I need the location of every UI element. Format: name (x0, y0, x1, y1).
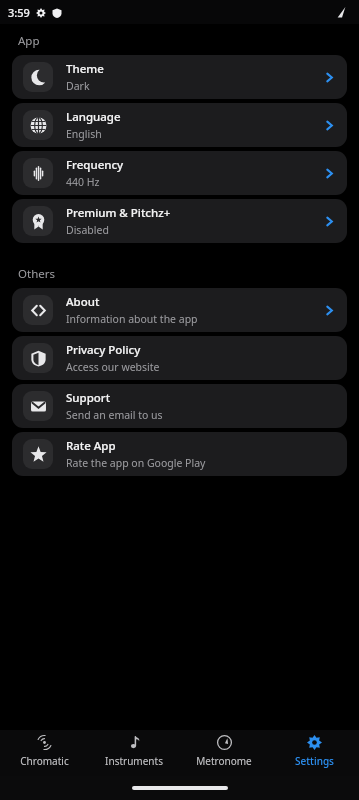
staticText: Access our website (66, 360, 160, 374)
staticText: Chromatic (20, 754, 69, 768)
staticText: Information about the app (66, 312, 198, 326)
staticText: Privacy Policy (66, 342, 141, 358)
staticText: Others (18, 266, 55, 282)
staticText: Send an email to us (66, 408, 163, 422)
button[interactable]: Settings (269, 730, 359, 776)
staticText: Support (66, 390, 111, 406)
staticText: Instruments (105, 754, 163, 768)
button[interactable]: Chromatic (0, 730, 89, 776)
button[interactable]: Rate App (12, 432, 347, 476)
staticText: Premium & Pitchz+ (66, 205, 171, 221)
staticText: Rate the app on Google Play (66, 456, 206, 470)
staticText: Frequency (66, 157, 124, 173)
button[interactable]: Metronome (179, 730, 269, 776)
staticText: App (18, 33, 40, 49)
staticText: Disabled (66, 223, 109, 237)
button[interactable]: Language (12, 103, 347, 147)
button[interactable]: Support (12, 384, 347, 428)
staticText: Rate App (66, 438, 116, 454)
staticText: Theme (66, 61, 104, 77)
button[interactable]: Instruments (89, 730, 179, 776)
button[interactable]: Frequency (12, 151, 347, 195)
staticText: About (66, 294, 100, 310)
button[interactable]: Privacy Policy (12, 336, 347, 380)
staticText: Dark (66, 79, 90, 93)
staticText: 440 Hz (66, 175, 100, 189)
staticText: Metronome (196, 754, 252, 768)
button[interactable]: Theme (12, 55, 347, 99)
button[interactable]: Premium & Pitchz+ (12, 199, 347, 243)
staticText: 3:59 (8, 5, 30, 20)
button[interactable]: About (12, 288, 347, 332)
staticText: English (66, 127, 102, 141)
staticText: Settings (295, 754, 334, 768)
staticText: Language (66, 109, 121, 125)
